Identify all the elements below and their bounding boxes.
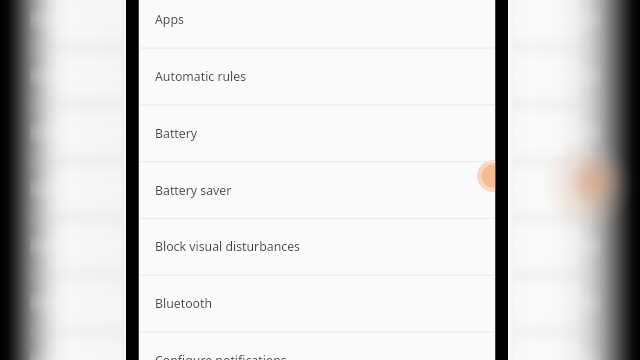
button[interactable]: Configure notifications (139, 332, 496, 360)
button[interactable]: Automatic rules (139, 48, 496, 105)
button[interactable]: Battery saver (139, 161, 496, 218)
button[interactable]: Battery (139, 104, 496, 161)
button[interactable]: Bluetooth (139, 275, 496, 332)
button[interactable]: Apps (139, 0, 496, 57)
button[interactable]: Block visual disturbances (139, 218, 496, 275)
